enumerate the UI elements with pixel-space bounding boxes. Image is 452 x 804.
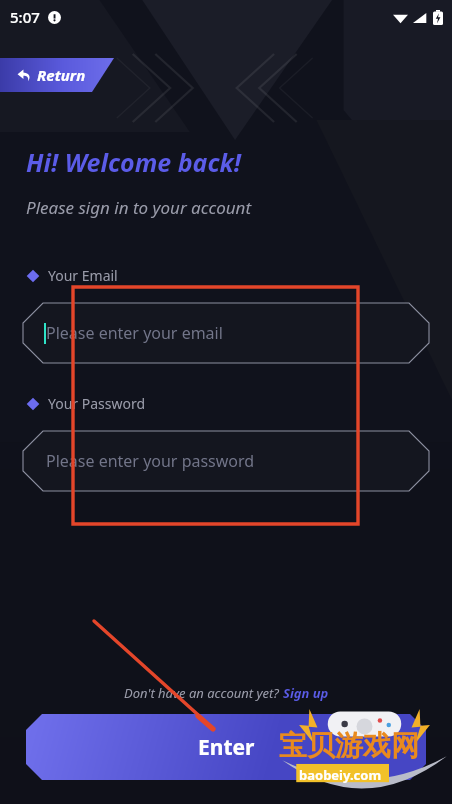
- staticText: Enter: [198, 733, 255, 762]
- staticText: Return: [37, 65, 86, 85]
- button[interactable]: Enter: [26, 714, 426, 780]
- button[interactable]: Please enter your email: [23, 303, 429, 363]
- staticText: Don't have an account yet?: [124, 684, 283, 702]
- button[interactable]: Please enter your password: [23, 431, 429, 491]
- staticText: Sign up: [283, 684, 329, 702]
- staticText: Your Email: [48, 266, 118, 285]
- staticText: 5:07: [10, 7, 40, 27]
- staticText: Please enter your email: [46, 322, 223, 344]
- staticText: Your Password: [48, 394, 146, 413]
- staticText: 宝贝游戏网: [279, 728, 419, 763]
- button[interactable]: Sign up: [283, 684, 329, 702]
- button[interactable]: Return: [0, 58, 114, 92]
- staticText: baobeiy.com: [299, 766, 382, 784]
- staticText: Please sign in to your account: [26, 196, 252, 219]
- staticText: Please enter your password: [46, 450, 255, 472]
- staticText: Hi! Welcome back!: [26, 145, 241, 179]
